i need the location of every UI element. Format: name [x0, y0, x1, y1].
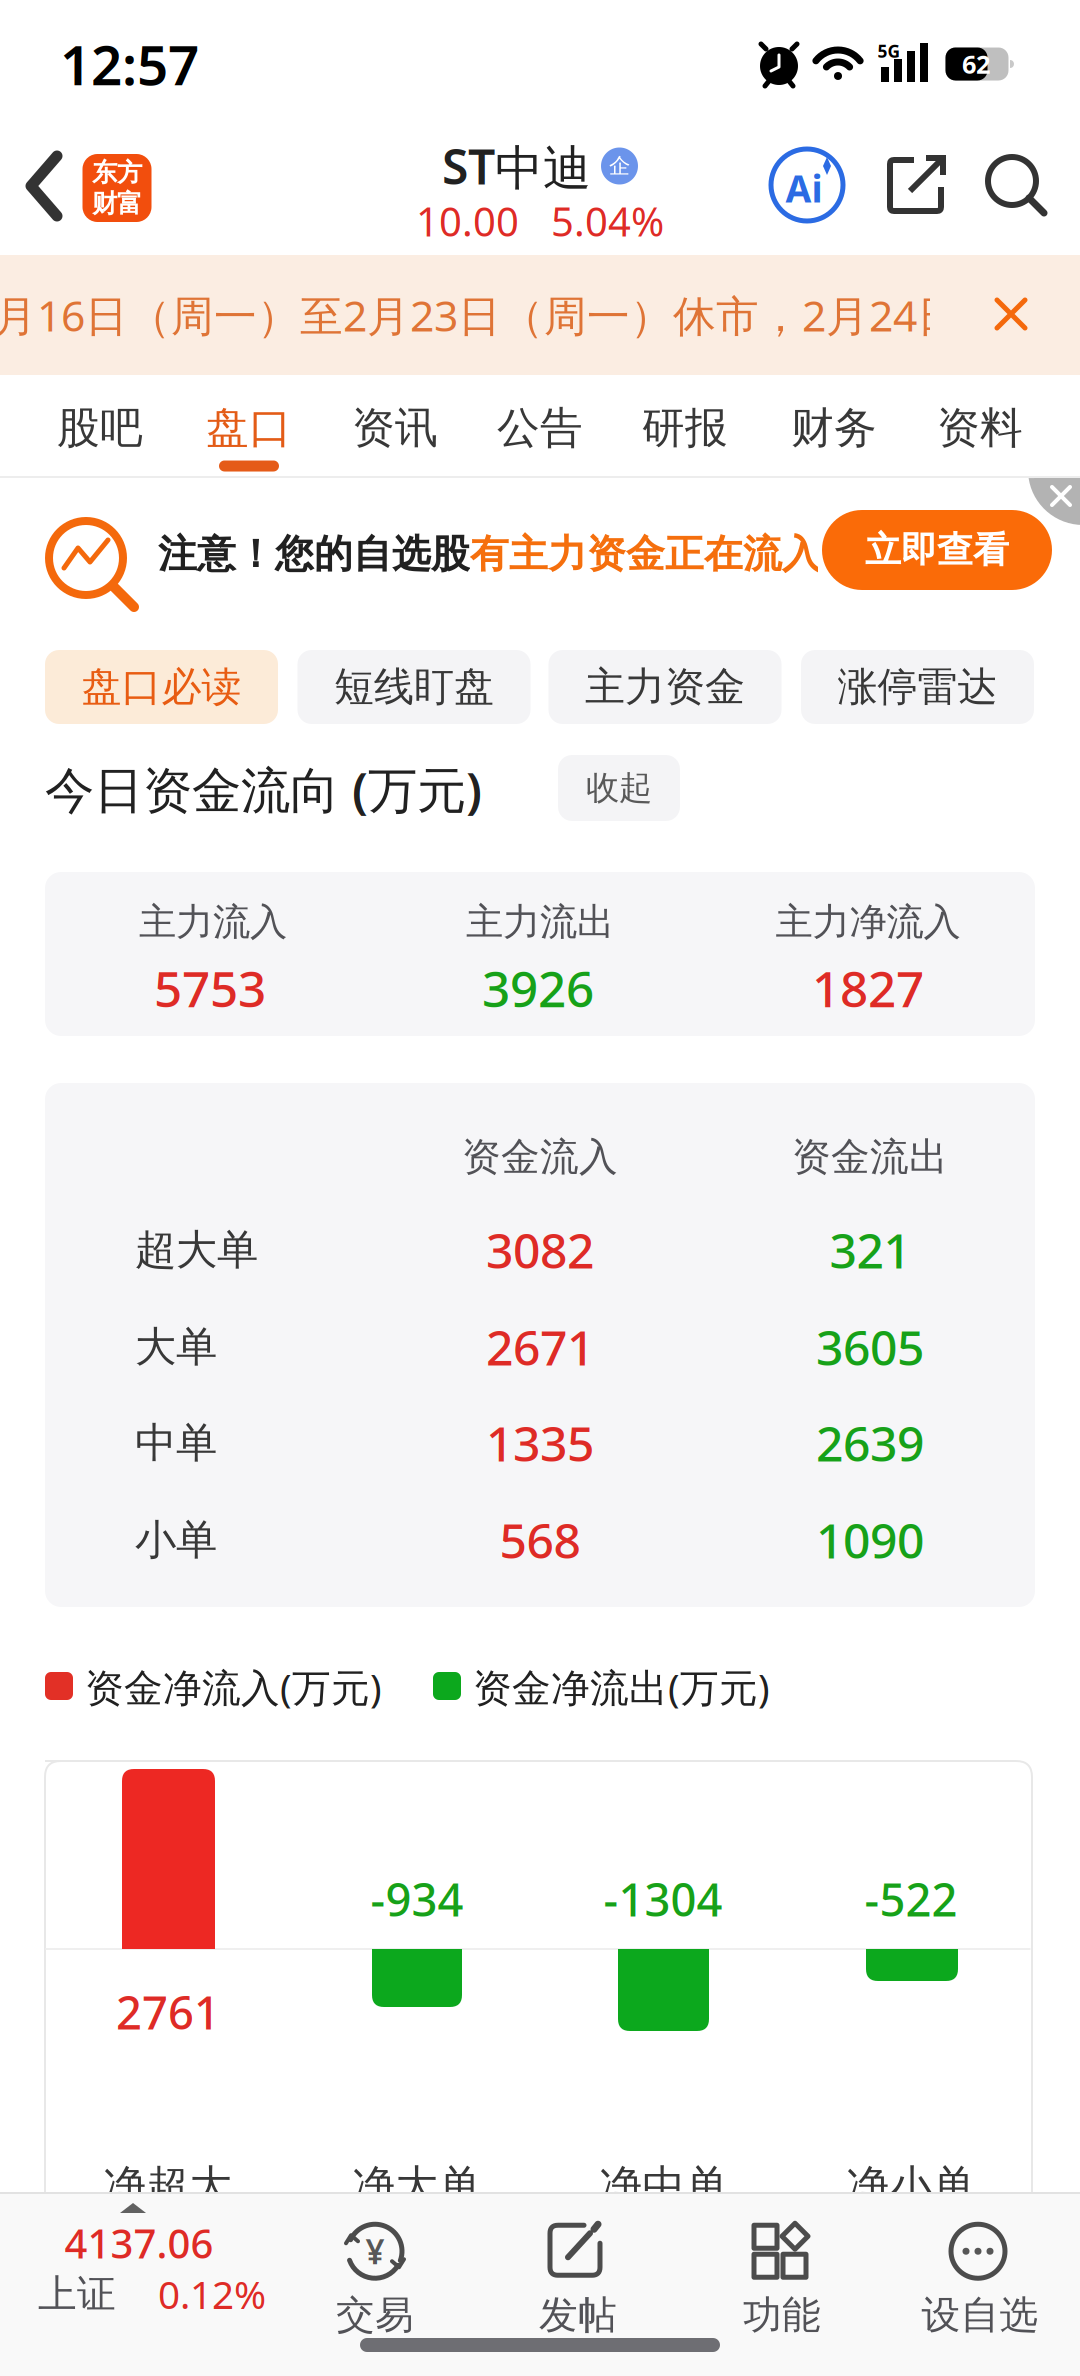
button[interactable]: Share — [888, 158, 946, 214]
button[interactable]: 股吧 — [35, 383, 165, 473]
button[interactable]: 立即查看 — [822, 510, 1052, 590]
staticText: 交易 — [336, 2291, 414, 2339]
staticText: 短线盯盘 — [334, 662, 494, 711]
button[interactable]: 短线盯盘 — [297, 650, 530, 724]
staticText: 5G — [877, 39, 900, 62]
staticText: 0.12% — [158, 2268, 266, 2320]
staticText: 资金净流出(万元) — [473, 1661, 770, 1713]
staticText: 3926 — [482, 955, 594, 1021]
staticText: 上证 — [38, 2270, 116, 2318]
staticText: Ai — [785, 163, 822, 213]
staticText: 568 — [499, 1508, 580, 1572]
button[interactable]: 关闭 — [995, 298, 1027, 330]
staticText: 盘口必读 — [81, 662, 241, 711]
staticText: 今日资金流向 (万元) — [45, 756, 482, 822]
staticText: 4137.06 — [64, 2216, 213, 2269]
staticText: 12:57 — [60, 28, 199, 100]
staticText: 2761 — [116, 1982, 220, 2042]
staticText: 净中单 — [599, 2160, 728, 2212]
staticText: 1827 — [812, 955, 924, 1021]
staticText: 净超大 — [103, 2160, 232, 2212]
staticText: 主力资金 — [585, 662, 745, 711]
staticText: 资金流入 — [462, 1133, 618, 1181]
staticText: 62 — [962, 47, 990, 81]
staticText: 有主力资金正在流入 — [470, 530, 821, 578]
staticText: 5.04% — [551, 194, 664, 247]
staticText: 10.00 — [416, 194, 519, 247]
staticText: 3605 — [816, 1315, 924, 1379]
staticText: ST中迪 — [442, 134, 591, 198]
staticText: 财务 — [791, 402, 877, 454]
staticText: 3082 — [486, 1218, 594, 1282]
button[interactable]: 设自选 — [895, 2195, 1065, 2365]
staticText: 主力流入 — [139, 899, 287, 945]
staticText: 企 — [609, 153, 630, 179]
staticText: 主力流出 — [466, 899, 614, 945]
staticText: 1090 — [816, 1508, 924, 1572]
button[interactable]: ¥ — [290, 2195, 460, 2365]
button[interactable]: Back — [14, 141, 74, 231]
staticText: 注意！您的自选股 — [158, 530, 470, 578]
staticText: 设自选 — [921, 2291, 1038, 2339]
staticText: 收起 — [586, 767, 652, 808]
staticText: 东方 — [92, 157, 142, 188]
button[interactable]: 东方财富 — [82, 154, 151, 222]
staticText: 中单 — [135, 1418, 217, 1468]
staticText: ¥ — [365, 2229, 384, 2273]
staticText: 5753 — [154, 955, 266, 1021]
button[interactable]: Search — [986, 155, 1048, 217]
staticText: -934 — [370, 1869, 463, 1929]
button[interactable]: 发帖 — [493, 2195, 663, 2365]
button[interactable]: 盘口 — [184, 383, 314, 473]
staticText: -522 — [864, 1869, 957, 1929]
staticText: 公告 — [497, 402, 583, 454]
staticText: 2月16日（周一）至2月23日（周一）休市，2月24日 — [0, 287, 960, 343]
staticText: 研报 — [642, 402, 728, 454]
staticText: 资金净流入(万元) — [85, 1661, 382, 1713]
staticText: 涨停雷达 — [837, 662, 997, 711]
staticText: 净大单 — [352, 2160, 481, 2212]
button[interactable]: 公告 — [475, 383, 605, 473]
staticText: 超大单 — [135, 1225, 258, 1275]
button[interactable]: 资讯 — [330, 383, 460, 473]
staticText: 资料 — [937, 402, 1023, 454]
staticText: 立即查看 — [865, 528, 1009, 572]
staticText: 功能 — [743, 2291, 821, 2339]
button[interactable]: 资料 — [915, 383, 1045, 473]
button[interactable]: 收起 — [558, 755, 680, 821]
staticText: 主力净流入 — [775, 899, 960, 945]
staticText: 321 — [829, 1218, 910, 1282]
button[interactable]: Close — [1050, 485, 1072, 507]
staticText: 资金流出 — [792, 1133, 948, 1181]
staticText: 盘口 — [206, 402, 292, 454]
staticText: 发帖 — [539, 2291, 617, 2339]
staticText: 2639 — [816, 1411, 924, 1475]
button[interactable]: 研报 — [620, 383, 750, 473]
button[interactable]: 主力资金 — [548, 650, 781, 724]
button[interactable]: 涨停雷达 — [801, 650, 1034, 724]
button[interactable]: 财务 — [769, 383, 899, 473]
button[interactable]: AI — [771, 149, 843, 221]
staticText: 净小单 — [846, 2160, 975, 2212]
button[interactable]: 4137.06 — [10, 2192, 290, 2376]
staticText: 资讯 — [352, 402, 438, 454]
button[interactable]: 功能 — [697, 2195, 867, 2365]
staticText: 财富 — [92, 188, 142, 219]
staticText: 大单 — [135, 1322, 217, 1372]
staticText: 2671 — [486, 1315, 594, 1379]
staticText: 小单 — [135, 1515, 217, 1565]
staticText: 股吧 — [57, 402, 143, 454]
button[interactable]: 盘口必读 — [45, 650, 278, 724]
staticText: 1335 — [486, 1411, 594, 1475]
staticText: -1304 — [603, 1869, 722, 1929]
